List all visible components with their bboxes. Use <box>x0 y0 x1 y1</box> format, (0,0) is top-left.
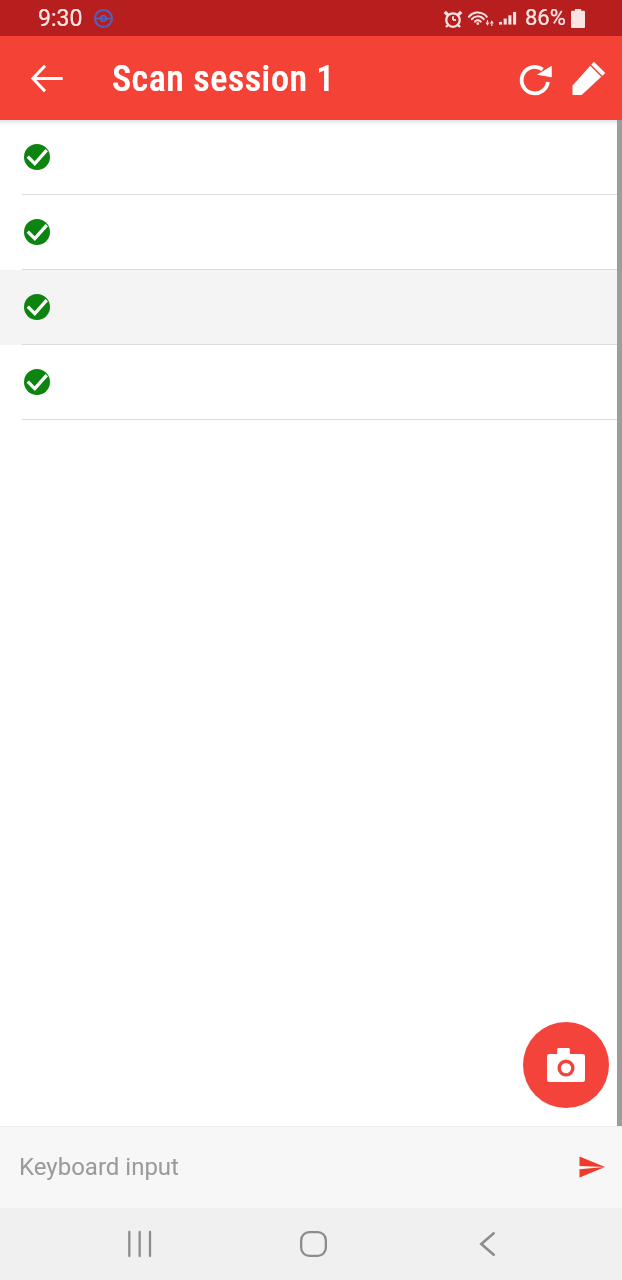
button[interactable]: Edit <box>557 47 619 109</box>
button[interactable]: Take photo <box>523 1022 609 1108</box>
button[interactable]: Refresh <box>495 47 557 109</box>
button[interactable]: Send <box>564 1139 620 1195</box>
button[interactable]: Scanned item, verified <box>0 270 622 345</box>
staticText: Scan session 1 <box>112 58 335 100</box>
button[interactable]: Scanned item, verified <box>0 195 622 270</box>
button[interactable]: Scanned item, verified <box>0 345 622 420</box>
staticText: Keyboard input <box>19 1153 179 1181</box>
button[interactable]: Scanned item, verified <box>0 120 622 195</box>
button[interactable]: Navigate up <box>16 47 78 109</box>
button[interactable]: Home <box>258 1208 368 1280</box>
button[interactable]: Recent apps <box>83 1208 193 1280</box>
staticText: 86% <box>525 5 566 31</box>
button[interactable]: Back <box>432 1208 542 1280</box>
staticText: 9:30 <box>38 5 83 32</box>
